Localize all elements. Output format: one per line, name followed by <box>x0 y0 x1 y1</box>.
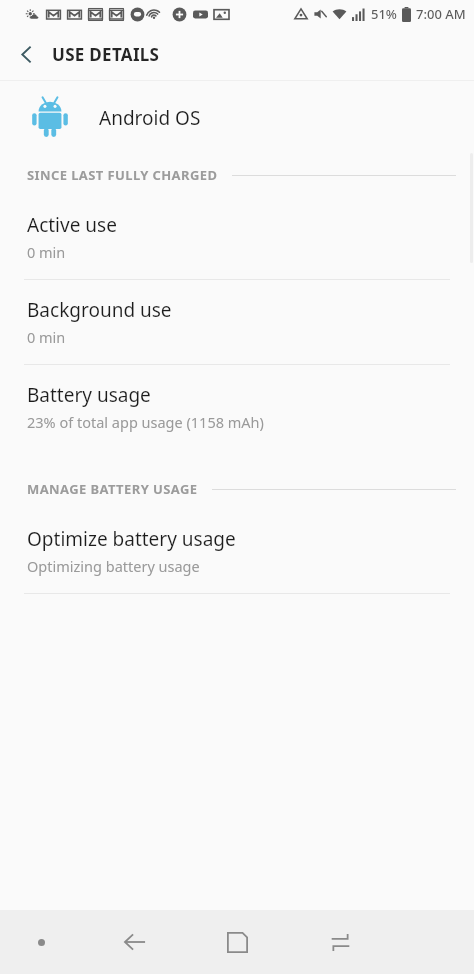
staticText: Optimize battery usage <box>27 526 236 552</box>
staticText: 51% <box>371 5 397 23</box>
button[interactable]: Optimize battery usage <box>0 509 474 594</box>
staticText: SINCE LAST FULLY CHARGED <box>27 166 218 184</box>
staticText: Active use <box>27 212 117 238</box>
staticText: 0 min <box>27 327 66 347</box>
staticText: Android OS <box>99 105 201 131</box>
staticText: 0 min <box>27 242 66 262</box>
staticText: Battery usage <box>27 382 151 408</box>
button[interactable]: Background use <box>0 280 474 365</box>
button[interactable]: Back <box>0 28 52 80</box>
button[interactable]: Recents <box>289 910 392 974</box>
staticText: 7:00 AM <box>416 5 466 23</box>
button[interactable]: Active use <box>0 195 474 280</box>
button[interactable]: Battery usage <box>0 365 474 449</box>
staticText: Background use <box>27 297 172 323</box>
button[interactable]: Back <box>83 910 186 974</box>
staticText: USE DETAILS <box>52 43 160 66</box>
staticText: 23% of total app usage (1158 mAh) <box>27 412 264 432</box>
staticText: MANAGE BATTERY USAGE <box>27 480 198 498</box>
button[interactable]: Android OS <box>0 81 474 155</box>
staticText: Optimizing battery usage <box>27 556 200 576</box>
button[interactable]: Home <box>186 910 289 974</box>
